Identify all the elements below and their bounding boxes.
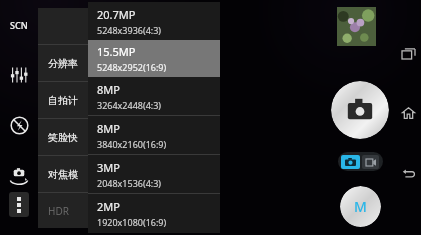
staticText: 8MP [97,121,120,136]
staticText: 20.7MP [97,7,136,22]
button[interactable]: Back [396,158,421,188]
staticText: 笑脸快 [48,131,78,144]
button[interactable]: HDR [38,193,220,228]
staticText: 1920x1080(16:9) [97,216,167,228]
staticText: 5248x2952(16:9) [97,61,167,73]
staticText: 自拍计 [48,94,78,107]
button[interactable]: More options [9,192,29,217]
staticText: 8MP [97,82,120,97]
button[interactable]: Home [396,98,421,128]
button[interactable]: 分辨率 [38,45,220,81]
staticText: M [354,197,367,216]
staticText: 2MP [97,199,120,214]
button[interactable]: Video mode [362,155,379,169]
button[interactable]: Recents [396,38,421,68]
button[interactable]: 笑脸快 [38,119,220,155]
staticText: 3264x2448(4:3) [97,99,162,111]
button[interactable]: Switch camera [2,158,36,192]
button[interactable]: 20.7MP [88,2,220,40]
button[interactable]: 3MP [88,155,220,193]
button[interactable]: Flash off [2,108,36,142]
button[interactable]: 8MP [88,77,220,115]
staticText: 对焦模 [48,168,78,181]
button[interactable]: Shutter [331,81,389,139]
staticText: 5248x3936(4:3) [97,24,162,36]
staticText: HDR [48,204,69,218]
button[interactable]: SCN [2,12,36,38]
staticText: 15.5MP [97,44,136,59]
button[interactable]: 8MP [88,116,220,154]
staticText: SCN [10,19,28,31]
staticText: 3MP [97,160,120,175]
button[interactable]: 对焦模 [38,156,220,192]
button[interactable]: Last photo [337,7,376,46]
staticText: 分辨率 [48,57,78,70]
button[interactable]: 15.5MP [88,40,220,77]
button[interactable]: Tools [38,8,220,44]
staticText: 2048x1536(4:3) [97,177,162,189]
staticText: 3840x2160(16:9) [97,138,167,150]
button[interactable]: 2MP [88,194,220,232]
button[interactable]: Settings sliders [2,58,36,92]
button[interactable]: Photo mode [341,155,360,169]
button[interactable]: 自拍计 [38,82,220,118]
button[interactable]: Manual mode [340,186,381,227]
